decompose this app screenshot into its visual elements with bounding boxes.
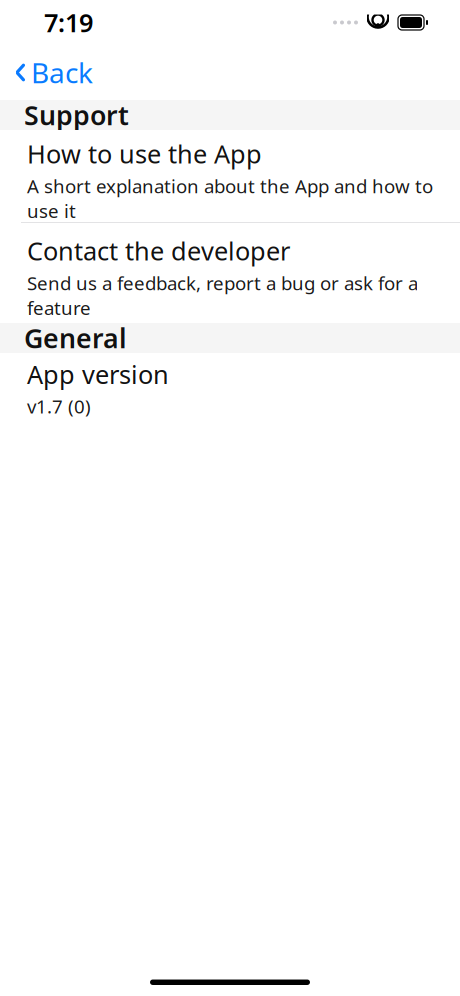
button[interactable]: App version xyxy=(0,353,460,415)
staticText: App version xyxy=(27,357,169,391)
staticText: Contact the developer xyxy=(27,234,290,267)
staticText: Support xyxy=(24,97,129,133)
staticText: A short explanation about the App and ho… xyxy=(27,173,433,223)
staticText: 7:19 xyxy=(44,6,93,39)
staticText: General xyxy=(24,320,127,356)
button[interactable]: How to use the App xyxy=(0,130,460,222)
staticText: Send us a feedback, report a bug or ask … xyxy=(27,270,418,320)
staticText: How to use the App xyxy=(27,137,262,170)
staticText: v1.7 (0) xyxy=(27,394,91,419)
staticText: Back xyxy=(31,54,93,91)
button[interactable]: Back xyxy=(0,45,105,99)
button[interactable]: Contact the developer xyxy=(0,223,460,323)
